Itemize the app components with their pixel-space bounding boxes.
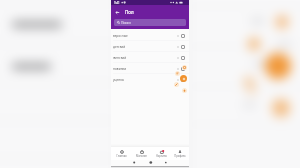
button[interactable]: Магазин <box>131 147 151 160</box>
button[interactable]: Главная <box>111 147 131 160</box>
button[interactable]: Профиль <box>171 147 189 160</box>
button[interactable]: новинки <box>111 63 189 74</box>
staticText: уценка <box>113 78 124 82</box>
button[interactable]: Back <box>111 5 123 19</box>
button[interactable]: Edit <box>174 82 179 87</box>
button[interactable]: Add <box>180 75 187 82</box>
staticText: взрослые <box>113 34 128 38</box>
button[interactable]: Корзина <box>151 147 171 160</box>
staticText: Магазин <box>136 154 147 158</box>
staticText: Профиль <box>174 154 186 158</box>
staticText: Корзина <box>156 154 167 158</box>
staticText: женский <box>113 56 127 60</box>
staticText: Поиск <box>121 20 132 25</box>
button[interactable]: женский <box>111 52 189 63</box>
button[interactable]: уценка <box>111 74 189 85</box>
staticText: Пол <box>125 9 134 15</box>
staticText: новинки <box>113 67 127 71</box>
button[interactable]: Home <box>182 88 187 93</box>
staticText: Главная <box>116 154 127 158</box>
button[interactable]: детский <box>111 41 189 52</box>
button[interactable]: Поиск <box>114 19 186 26</box>
button[interactable]: Filters <box>182 65 187 70</box>
button[interactable]: взрослые <box>111 30 189 41</box>
staticText: детский <box>113 45 126 49</box>
staticText: 9:41 <box>114 1 120 5</box>
button[interactable]: Sort <box>175 71 180 76</box>
